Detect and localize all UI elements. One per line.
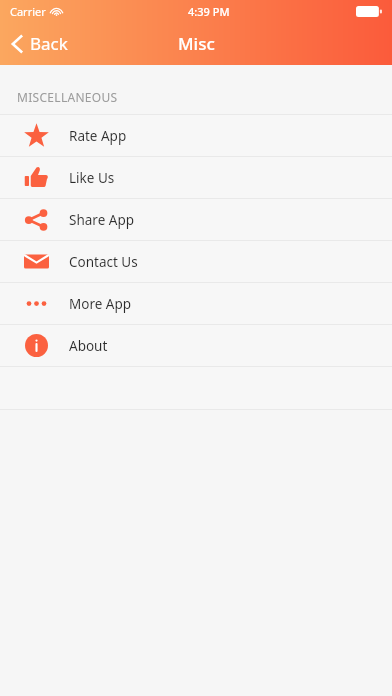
staticText: Contact Us [69,253,138,271]
other: More App [24,291,49,316]
button[interactable]: Rate App [0,115,392,156]
button[interactable]: Like Us [0,157,392,198]
button[interactable]: About [0,325,392,366]
button[interactable]: Contact Us [0,241,392,282]
other: Share App [24,207,49,232]
staticText: 4:39 PM [188,4,230,19]
staticText: Carrier [10,4,46,19]
staticText: Back [30,32,68,55]
other: Contact Us [24,249,49,274]
staticText: MISCELLANEOUS [17,89,118,105]
staticText: Rate App [69,127,127,145]
button[interactable]: Share App [0,199,392,240]
button[interactable]: Back [0,26,80,61]
staticText: About [69,337,108,355]
staticText: Like Us [69,169,115,187]
staticText: Misc [178,32,215,55]
other: Rate App [24,123,49,148]
staticText: Share App [69,211,134,229]
other: Like Us [24,165,49,190]
button[interactable]: More App [0,283,392,324]
staticText: More App [69,295,132,313]
other: About [24,333,49,358]
